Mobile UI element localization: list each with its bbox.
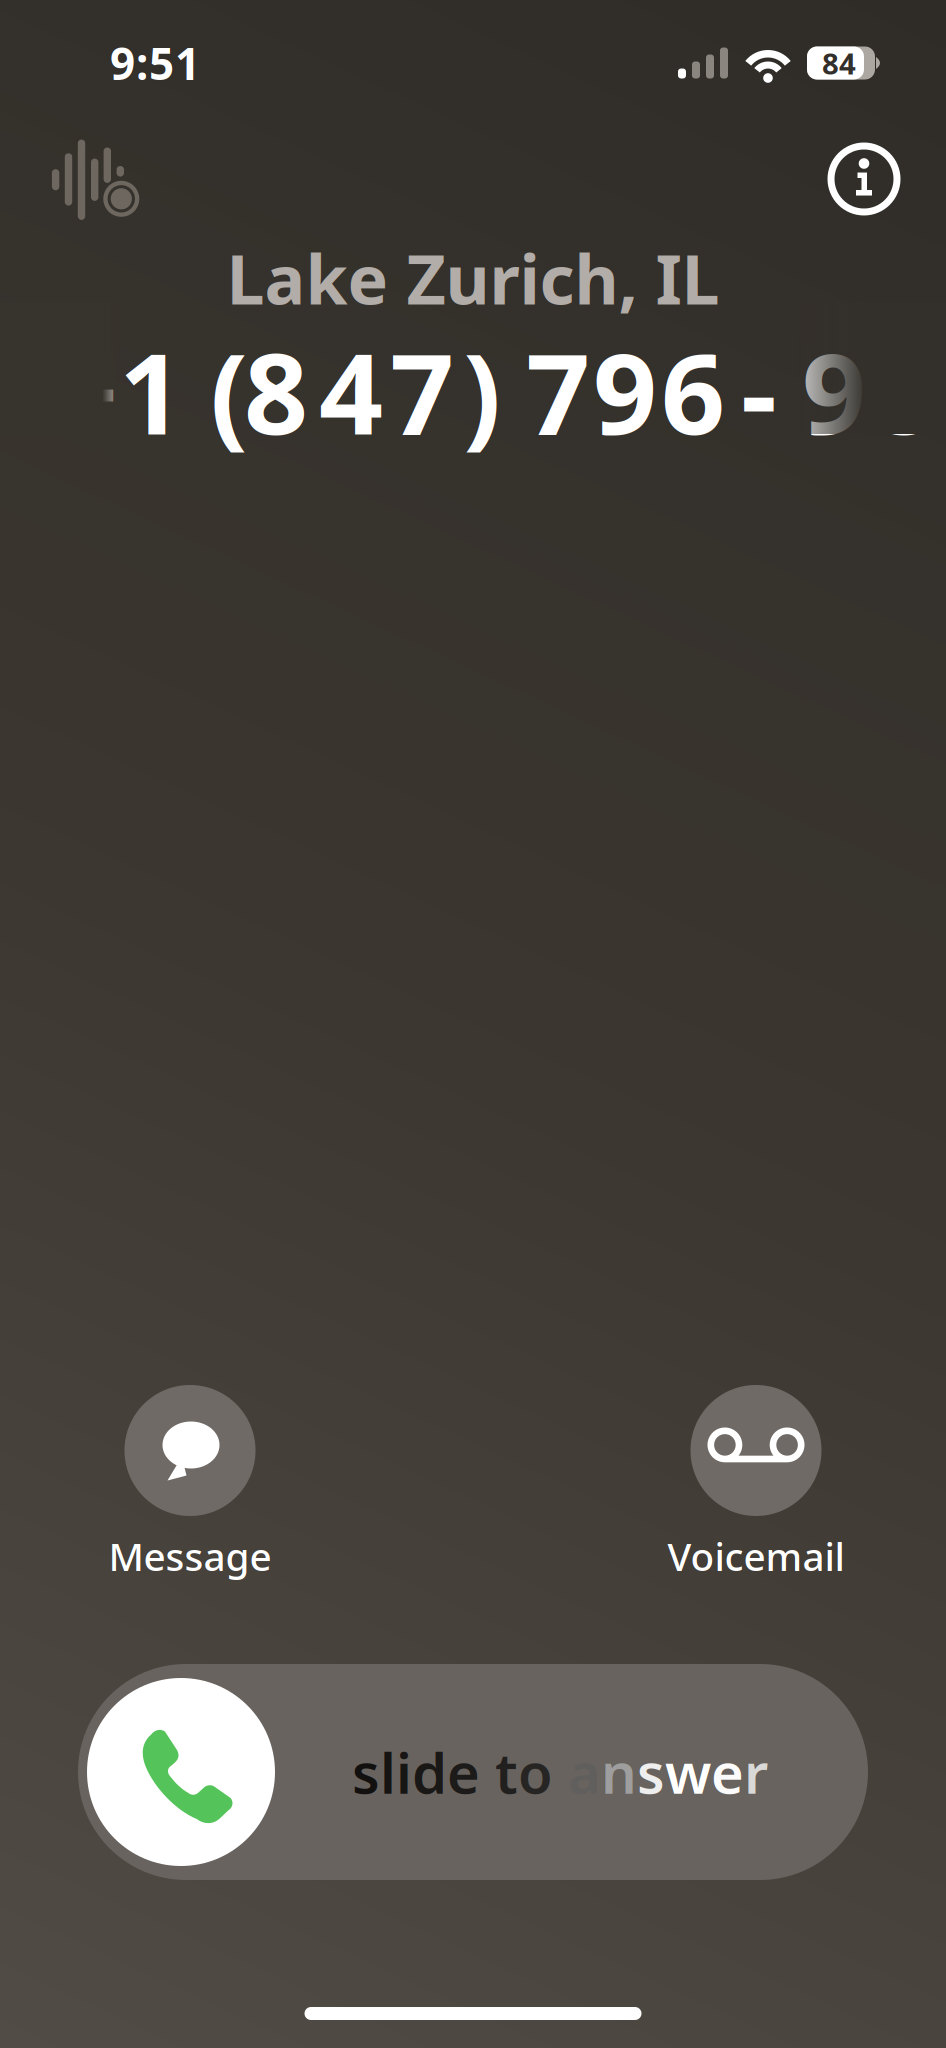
staticText: Message — [108, 1530, 271, 1582]
staticText: d — [412, 1735, 447, 1809]
staticText: s — [352, 1735, 380, 1809]
staticText: t — [495, 1735, 518, 1809]
staticText: o — [518, 1735, 553, 1809]
button[interactable]: Message — [50, 1385, 330, 1574]
staticText: Voicemail — [667, 1530, 844, 1582]
staticText: 8 — [244, 317, 308, 465]
button[interactable]: Call info — [816, 137, 912, 233]
staticText — [507, 317, 536, 465]
button[interactable]: Voicemail — [616, 1385, 896, 1574]
staticText: 9 — [802, 317, 866, 465]
staticText: s — [637, 1735, 665, 1809]
staticText: + — [54, 317, 118, 465]
staticText: 9 — [593, 317, 657, 465]
staticText: i — [396, 1735, 412, 1809]
staticText: 7 — [526, 317, 590, 465]
staticText: 6 — [661, 317, 725, 465]
staticText: - — [741, 317, 777, 465]
staticText: r — [744, 1735, 768, 1809]
staticText: 84 — [822, 43, 856, 82]
staticText: a — [568, 1735, 601, 1809]
staticText: l — [380, 1735, 396, 1809]
staticText — [119, 317, 148, 465]
staticText: ) — [463, 317, 501, 465]
staticText: 7 — [390, 317, 454, 465]
staticText: w — [665, 1735, 711, 1809]
staticText: Lake Zurich, IL — [226, 233, 719, 323]
staticText: ( — [210, 317, 248, 465]
staticText: n — [601, 1735, 637, 1809]
staticText: 4 — [319, 317, 383, 465]
staticText: 8 — [872, 317, 936, 465]
staticText: e — [711, 1735, 744, 1809]
staticText: 9:51 — [110, 34, 200, 92]
staticText: e — [447, 1735, 480, 1809]
button[interactable]: s — [0, 1664, 946, 1880]
staticText: 1 — [119, 317, 183, 465]
